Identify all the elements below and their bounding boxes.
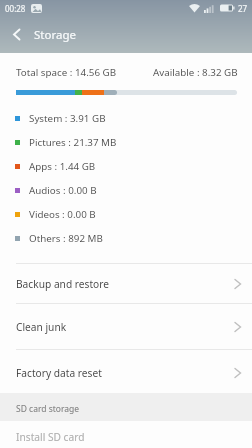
staticText: Total space : 14.56 GB <box>16 66 117 79</box>
staticText: Pictures : 21.37 MB <box>29 136 117 149</box>
staticText: Videos : 0.00 B <box>29 208 96 221</box>
button[interactable]: Backup and restore <box>0 264 252 303</box>
staticText: 00:28 <box>5 3 26 14</box>
staticText: 27 <box>238 3 248 14</box>
staticText: Storage <box>34 27 76 43</box>
button[interactable]: Install SD card <box>0 423 252 448</box>
staticText: Others : 892 MB <box>29 232 103 245</box>
button[interactable]: Factory data reset <box>0 350 252 395</box>
staticText: Apps : 1.44 GB <box>29 160 96 173</box>
staticText: Audios : 0.00 B <box>29 184 97 197</box>
staticText: System : 3.91 GB <box>29 112 106 125</box>
staticText: Factory data reset <box>16 366 102 380</box>
staticText: Clean junk <box>16 320 67 334</box>
staticText: Install SD card <box>16 430 85 444</box>
button[interactable]: Clean junk <box>0 304 252 349</box>
button[interactable]: Storage <box>0 16 252 53</box>
staticText: Backup and restore <box>16 277 110 291</box>
staticText: SD card storage <box>16 403 80 415</box>
staticText: Available : 8.32 GB <box>153 66 238 79</box>
